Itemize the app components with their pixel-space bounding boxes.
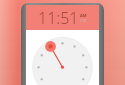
staticText: PM — [80, 18, 87, 23]
staticText: 11:51 — [38, 7, 79, 29]
button[interactable]: 11:51 — [26, 5, 99, 30]
staticText: AM — [80, 13, 87, 18]
button[interactable]: Select hour on clock dial — [26, 30, 99, 85]
